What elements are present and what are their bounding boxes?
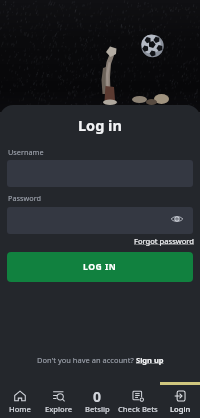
staticText: 0 [93,387,102,406]
staticText: Betslip [85,404,110,414]
staticText: Check Bets [118,404,158,414]
button[interactable]: Explore [40,381,78,418]
staticText: Password [8,193,42,203]
staticText: LOG IN [83,261,117,273]
button[interactable]: Check Bets [116,381,160,418]
staticText: Home [9,404,31,414]
button[interactable]: Login [160,381,200,418]
button[interactable]: Show password [169,211,185,227]
staticText: Log in [78,115,122,135]
staticText: Username [8,147,44,157]
button[interactable]: Sign up [136,355,164,365]
button[interactable]: Show password [7,207,193,234]
button[interactable]: Home [0,381,40,418]
staticText: Explore [45,404,73,414]
staticText: Sign up [136,355,164,365]
button[interactable]: 0 [78,381,116,418]
button[interactable]: Forgot password [134,236,194,246]
staticText: Login [170,404,191,414]
staticText: Don't you have an account? [37,355,136,365]
button[interactable]: LOG IN [7,252,193,282]
staticText: Forgot password [134,236,194,246]
